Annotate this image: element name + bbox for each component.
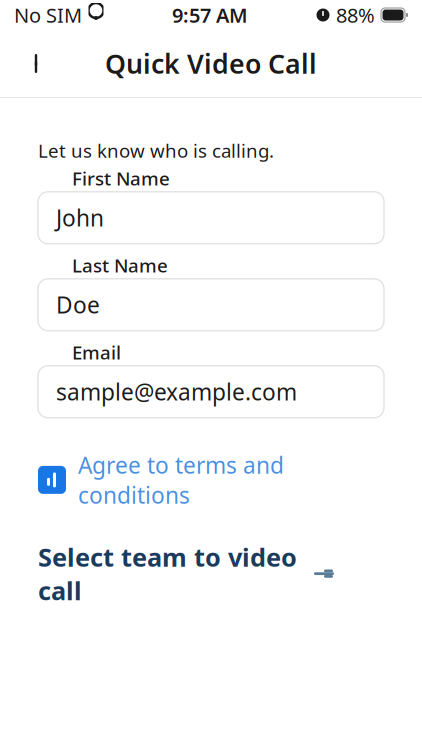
staticText: Agree to terms and conditions	[78, 450, 284, 510]
staticText: 9:57 AM	[172, 2, 248, 28]
staticText: Select team to video call	[38, 540, 297, 607]
button[interactable]: John	[0, 192, 422, 244]
staticText: John	[56, 203, 104, 233]
button[interactable]: Agree to terms and conditions	[0, 450, 422, 510]
staticText: No SIM	[14, 2, 82, 28]
button[interactable]: Select team to video call	[0, 540, 422, 607]
button[interactable]: Back	[16, 41, 60, 85]
staticText: First Name	[72, 166, 170, 191]
staticText: sample@example.com	[56, 377, 297, 407]
button[interactable]: sample@example.com	[0, 366, 422, 418]
staticText: Quick Video Call	[105, 46, 317, 81]
staticText: Doe	[56, 290, 100, 320]
staticText: Let us know who is calling.	[38, 138, 274, 163]
staticText: 88%	[336, 2, 375, 28]
button[interactable]: Doe	[0, 279, 422, 331]
staticText: Email	[72, 340, 121, 365]
staticText: Last Name	[72, 253, 168, 278]
